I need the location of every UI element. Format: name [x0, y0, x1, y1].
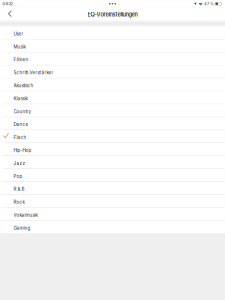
staticText: Country [13, 109, 31, 114]
button[interactable]: Musik [0, 39, 225, 52]
button[interactable]: Akustisch [0, 78, 225, 91]
button[interactable]: Dance [0, 117, 225, 130]
staticText: Musik [13, 44, 25, 49]
staticText: Gaming [13, 225, 30, 231]
button[interactable]: Flach [0, 130, 225, 143]
button[interactable]: Klassik [0, 91, 225, 104]
staticText: Akustisch [13, 83, 33, 88]
staticText: R & B [13, 186, 24, 192]
button[interactable]: Pop [0, 169, 225, 181]
button[interactable]: User [0, 26, 225, 39]
staticText: 47 % [204, 1, 214, 6]
button[interactable]: Vokalmusik [0, 208, 225, 220]
staticText: Klassik [13, 96, 27, 101]
staticText: Rock [13, 199, 24, 205]
button[interactable]: Filmen [0, 52, 225, 65]
staticText: User [13, 31, 23, 37]
staticText: Pop [13, 173, 22, 179]
button[interactable]: Country [0, 104, 225, 117]
staticText: Hip-Hop [13, 148, 31, 153]
button[interactable]: Jazz [0, 156, 225, 169]
button[interactable]: Hip-Hop [0, 143, 225, 156]
button[interactable]: Rock [0, 195, 225, 207]
staticText: Flach [13, 135, 26, 140]
staticText: 09:32 [2, 1, 12, 6]
staticText: Dance [13, 122, 28, 127]
staticText: Filmen [13, 57, 28, 62]
staticText: EQ-Voreinstellungen [87, 11, 137, 18]
button[interactable]: Zurück [0, 7, 19, 20]
staticText: Schritt-Verstärker [13, 70, 53, 75]
staticText: Jazz [13, 161, 25, 166]
staticText: Vokalmusik [13, 212, 37, 218]
button[interactable]: R & B [0, 182, 225, 194]
button[interactable]: Schritt-Verstärker [0, 65, 225, 78]
button[interactable]: Gaming [0, 221, 225, 233]
